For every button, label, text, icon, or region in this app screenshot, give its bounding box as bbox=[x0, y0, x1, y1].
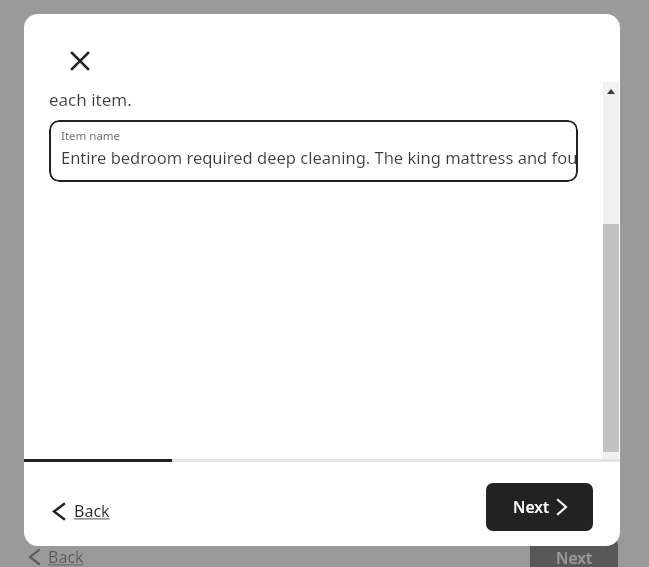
staticText: Next bbox=[556, 547, 593, 567]
button[interactable]: Back bbox=[46, 491, 118, 531]
button[interactable]: Next bbox=[530, 538, 618, 567]
button[interactable]: Close bbox=[58, 39, 102, 83]
button[interactable]: Next bbox=[486, 483, 593, 531]
staticText: Next bbox=[513, 496, 550, 518]
button[interactable]: Back bbox=[30, 544, 84, 567]
staticText: each item. bbox=[49, 88, 132, 111]
staticText: Item name bbox=[61, 128, 121, 144]
staticText: Back bbox=[74, 500, 110, 522]
button[interactable]: Item name bbox=[49, 120, 578, 182]
staticText: Entire bedroom required deep cleaning. T… bbox=[61, 146, 578, 168]
staticText: Back bbox=[48, 546, 84, 567]
